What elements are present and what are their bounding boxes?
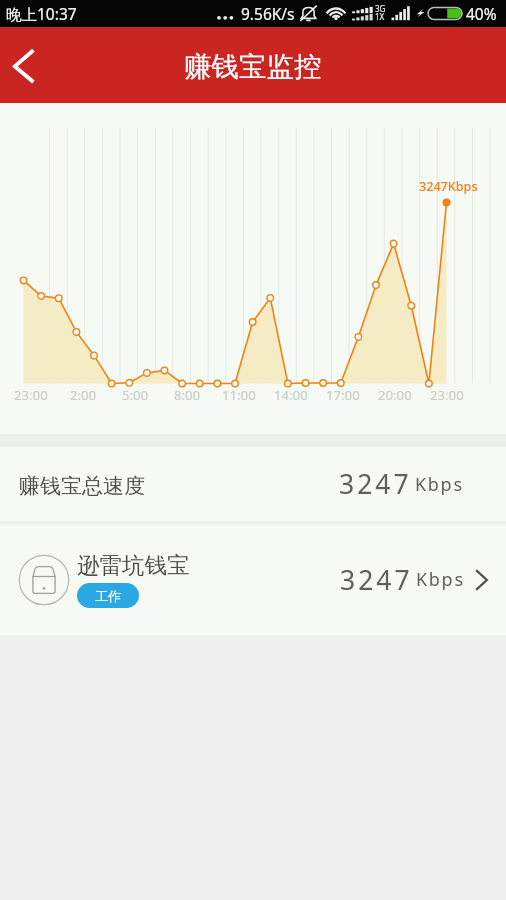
staticText: 17:00 <box>326 386 360 404</box>
staticText: 晚上10:37 <box>6 3 77 24</box>
staticText: 工作 <box>95 588 121 604</box>
staticText: 40% <box>466 3 497 24</box>
staticText: 逊雷坑钱宝 <box>77 551 190 579</box>
staticText: 14:00 <box>274 386 308 404</box>
button[interactable]: 赚钱宝总速度 <box>0 447 506 521</box>
staticText: 23:00 <box>430 386 464 404</box>
staticText: 9.56K/s <box>241 3 295 24</box>
staticText: 8:00 <box>174 386 201 404</box>
staticText: 23:00 <box>14 386 48 404</box>
staticText: Kbps <box>415 472 464 497</box>
staticText: 3247Kbps <box>419 178 478 195</box>
staticText: 3247 <box>339 466 412 502</box>
staticText: 3247 <box>340 562 413 598</box>
button[interactable]: 逊雷坑钱宝 <box>0 524 506 635</box>
staticText: 赚钱宝监控 <box>184 50 322 85</box>
staticText: 20:00 <box>378 386 412 404</box>
staticText: 赚钱宝总速度 <box>19 473 145 499</box>
staticText: 5:00 <box>122 386 149 404</box>
staticText: 2:00 <box>70 386 97 404</box>
staticText: 1X <box>375 11 385 22</box>
staticText: 11:00 <box>222 386 256 404</box>
staticText: 3G <box>375 3 386 14</box>
button[interactable]: Back <box>0 31 48 79</box>
staticText: Kbps <box>416 567 465 592</box>
